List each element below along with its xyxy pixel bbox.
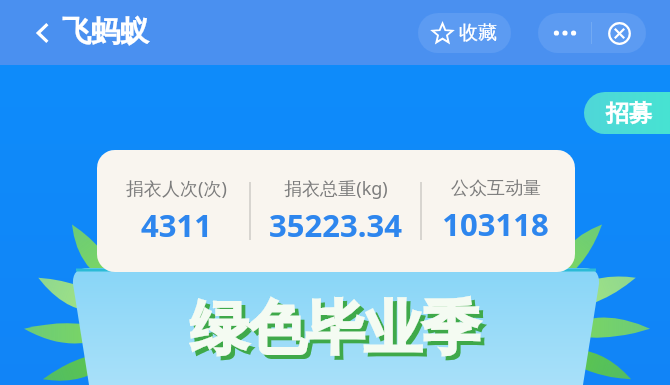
staticText: 35223.34 [269, 204, 402, 246]
button[interactable]: 捐衣人次(次) [97, 150, 575, 272]
staticText: 招募 [606, 99, 652, 128]
button[interactable]: 招募 [584, 92, 670, 134]
staticText: 捐衣总重(kg) [284, 176, 388, 201]
button[interactable]: 公众互动量 [422, 177, 569, 245]
button[interactable]: 捐衣人次(次) [103, 176, 249, 246]
staticText: 绿色毕业季 [190, 292, 480, 365]
staticText: 4311 [141, 204, 212, 246]
button[interactable]: 收藏 [418, 13, 511, 53]
staticText: 绿色毕业季 [194, 296, 484, 369]
staticText: 飞蚂蚁 [62, 13, 149, 50]
button[interactable]: More options [538, 13, 591, 53]
staticText: 103118 [442, 203, 549, 245]
staticText: 捐衣人次(次) [126, 176, 227, 201]
button[interactable]: Close [592, 13, 646, 53]
button[interactable]: 捐衣总重(kg) [251, 176, 420, 246]
staticText: 收藏 [459, 21, 497, 45]
button[interactable]: Back [22, 12, 64, 54]
staticText: 公众互动量 [451, 177, 541, 200]
